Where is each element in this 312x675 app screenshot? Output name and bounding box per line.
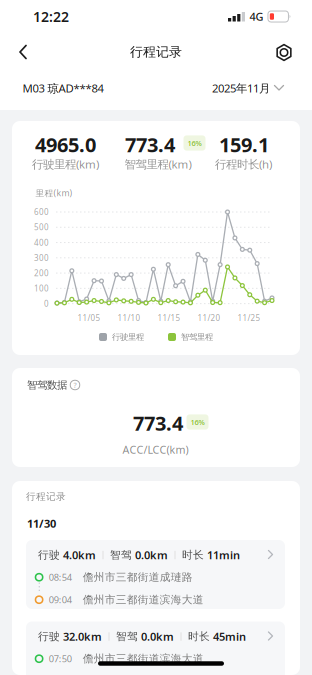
button[interactable]: About smart driving data <box>70 380 80 390</box>
staticText: 时长 <box>182 548 204 562</box>
staticText: 行程记录 <box>130 44 182 60</box>
staticText: 儋州市三都街道滨海大道 <box>83 593 204 606</box>
staticText: 773.4 <box>133 409 183 437</box>
staticText: 4965.0 <box>35 131 96 158</box>
staticText: 智驾里程(km) <box>124 156 191 172</box>
button[interactable]: M03 琼AD***84 <box>22 80 103 96</box>
staticText: 行驶里程(km) <box>32 156 99 172</box>
staticText: 行程记录 <box>26 490 66 503</box>
staticText: 12:22 <box>33 7 69 26</box>
staticText: 行驶里程 <box>112 332 144 342</box>
staticText: 773.4 <box>125 131 175 158</box>
staticText: 100 <box>34 283 49 294</box>
staticText: ACC/LCC(km) <box>122 442 188 457</box>
staticText: 儋州市三都街道成璉路 <box>83 570 193 584</box>
staticText: 儋州市三都街道滨海大道 <box>83 652 204 665</box>
staticText: 11min <box>207 547 240 563</box>
staticText: 200 <box>34 268 49 278</box>
button[interactable]: Settings <box>275 43 293 61</box>
button[interactable]: Back <box>15 42 31 61</box>
staticText: 09:04 <box>49 593 72 606</box>
staticText: 时长 <box>188 630 210 643</box>
staticText: ? <box>73 380 76 390</box>
staticText: 行驶 <box>38 548 60 562</box>
staticText: 32.0km <box>63 629 102 644</box>
staticText: 159.1 <box>219 131 269 158</box>
staticText: 智驾 <box>116 630 138 643</box>
staticText: 4G <box>249 9 263 24</box>
staticText: 500 <box>34 222 49 233</box>
staticText: 11/05 <box>77 313 100 323</box>
staticText: 400 <box>34 237 49 248</box>
staticText: 11/10 <box>117 313 140 323</box>
staticText: 45min <box>213 629 246 644</box>
staticText: M03 琼AD***84 <box>22 80 103 96</box>
button[interactable]: 2025年11月 <box>212 80 284 96</box>
staticText: 里程(km) <box>35 187 72 199</box>
staticText: 行程时长(h) <box>215 156 272 172</box>
staticText: 智驾 <box>110 548 132 562</box>
staticText: 11/20 <box>197 313 220 323</box>
staticText: 16% <box>190 417 204 427</box>
staticText: 行驶 <box>38 630 60 643</box>
staticText: 11/15 <box>157 313 180 323</box>
staticText: 300 <box>34 252 49 263</box>
staticText: 08:54 <box>49 571 72 584</box>
staticText: 600 <box>34 207 49 217</box>
staticText: 4.0km <box>63 547 96 563</box>
staticText: 智驾里程 <box>181 332 213 342</box>
staticText: 2025年11月 <box>212 80 270 96</box>
staticText: 07:50 <box>49 652 72 665</box>
staticText: 0 <box>44 298 49 309</box>
button[interactable]: 行驶 <box>26 621 285 675</box>
staticText: 11/30 <box>27 516 56 531</box>
staticText: 智驾数据 <box>27 378 67 391</box>
button[interactable]: 行驶 <box>26 540 285 609</box>
staticText: 0.0km <box>135 547 168 563</box>
staticText: 0.0km <box>141 629 174 644</box>
staticText: 16% <box>187 138 201 148</box>
staticText: 11/25 <box>237 313 260 323</box>
